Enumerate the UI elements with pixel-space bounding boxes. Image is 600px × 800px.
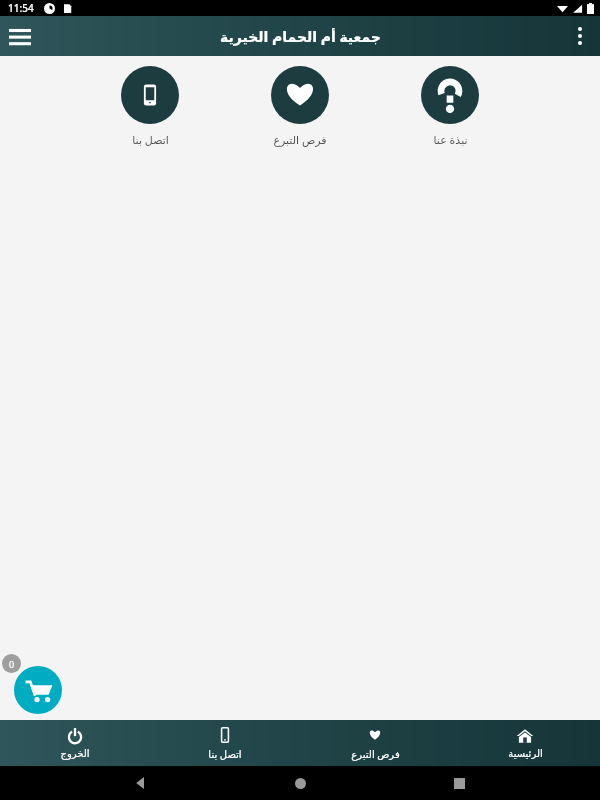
button[interactable]: Home <box>450 720 600 766</box>
staticText: جمعية أم الحمام الخيرية <box>220 27 381 46</box>
button[interactable]: Back <box>123 766 159 800</box>
staticText: الخروج <box>60 748 90 760</box>
staticText: 0 <box>9 658 15 670</box>
button[interactable]: Home <box>282 766 318 800</box>
staticText: فرص التبرع <box>351 747 400 761</box>
button[interactable]: More options <box>560 16 600 56</box>
button[interactable]: Recent apps <box>441 766 477 800</box>
button[interactable]: Logout <box>0 720 150 766</box>
button[interactable]: About us <box>375 66 525 147</box>
button[interactable]: Contact us <box>150 720 300 766</box>
button[interactable]: Contact us <box>75 66 225 147</box>
button[interactable]: Donation opportunities <box>225 66 375 147</box>
button[interactable]: Donations <box>300 720 450 766</box>
staticText: 11:54 <box>8 1 34 15</box>
staticText: نبذة عنا <box>433 132 468 147</box>
staticText: الرئيسية <box>508 748 543 760</box>
staticText: فرص التبرع <box>273 132 327 147</box>
button[interactable]: Shopping cart <box>14 666 62 714</box>
button[interactable]: Menu <box>0 16 40 56</box>
staticText: اتصل بنا <box>132 132 169 147</box>
staticText: اتصل بنا <box>208 747 242 761</box>
